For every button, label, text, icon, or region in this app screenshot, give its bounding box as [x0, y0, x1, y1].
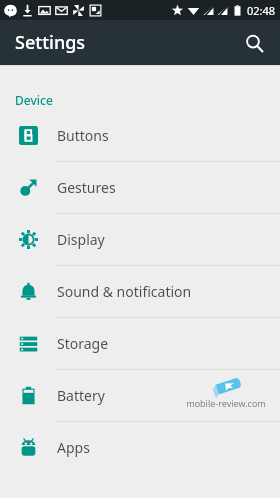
staticText: 02:48 — [247, 3, 276, 18]
staticText: Display — [57, 230, 105, 249]
staticText: Apps — [57, 438, 90, 457]
button[interactable]: Display — [0, 214, 280, 265]
staticText: Device — [15, 92, 53, 108]
button[interactable]: Search — [236, 25, 272, 61]
staticText: Gestures — [57, 178, 116, 197]
button[interactable]: Buttons — [0, 110, 280, 161]
button[interactable]: Apps — [0, 422, 280, 473]
button[interactable]: Battery — [0, 370, 280, 421]
staticText: Buttons — [57, 126, 109, 145]
staticText: Sound & notification — [57, 282, 192, 301]
button[interactable]: Gestures — [0, 162, 280, 213]
staticText: Battery — [57, 386, 105, 405]
button[interactable]: Storage — [0, 318, 280, 369]
button[interactable]: Sound & notification — [0, 266, 280, 317]
staticText: Storage — [57, 334, 109, 353]
staticText: Settings — [15, 30, 86, 55]
staticText: mobile-review.com — [186, 397, 266, 409]
